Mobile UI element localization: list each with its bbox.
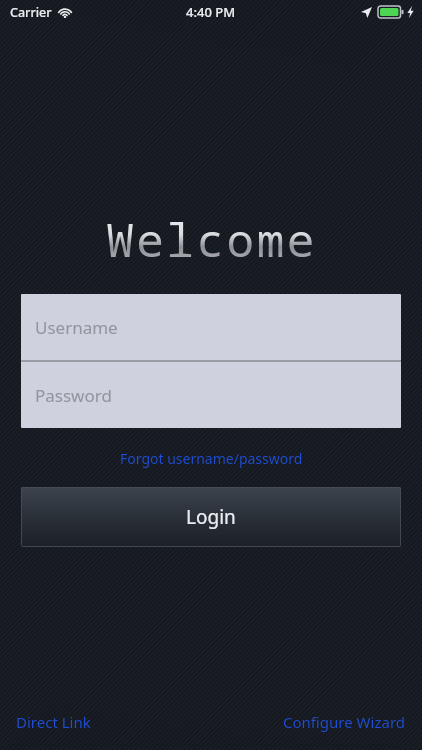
button[interactable]: Password [21, 362, 401, 428]
staticText: Username [35, 316, 118, 339]
staticText: Configure Wizard [283, 712, 406, 732]
staticText: Carrier [10, 4, 52, 21]
staticText: Forgot username/password [120, 449, 303, 468]
staticText: Password [35, 384, 112, 407]
button[interactable]: Login [21, 487, 401, 547]
button[interactable]: Forgot username/password [112, 446, 311, 471]
staticText: 4:40 PM [186, 3, 236, 21]
staticText: Direct Link [16, 712, 91, 732]
button[interactable]: Configure Wizard [280, 708, 409, 736]
staticText: Welcome [106, 208, 317, 271]
button[interactable]: Direct Link [13, 708, 94, 736]
staticText: Login [186, 504, 236, 530]
button[interactable]: Username [21, 294, 401, 360]
